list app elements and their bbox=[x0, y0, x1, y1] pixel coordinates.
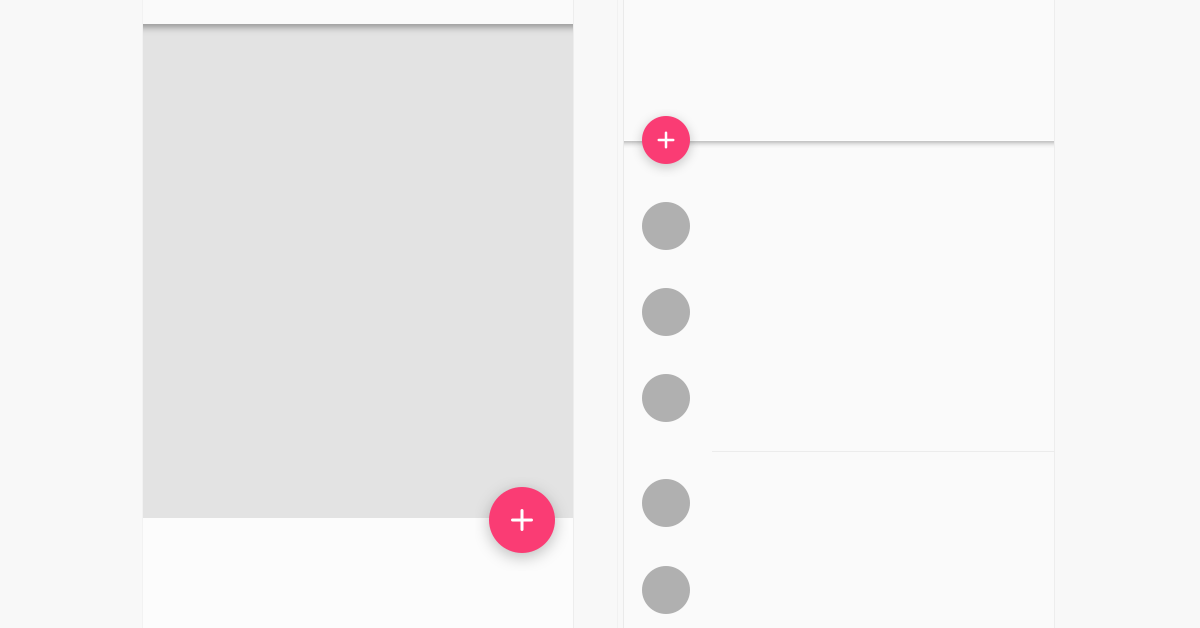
button[interactable]: Add bbox=[642, 116, 690, 164]
button[interactable]: Contact bbox=[623, 553, 1055, 627]
button[interactable]: Add bbox=[489, 487, 555, 553]
button[interactable]: Contact bbox=[623, 189, 1055, 263]
button[interactable]: Contact bbox=[623, 466, 1055, 540]
button[interactable]: Contact bbox=[623, 361, 1055, 435]
button[interactable]: Contact bbox=[623, 275, 1055, 349]
